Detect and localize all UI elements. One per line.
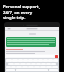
button[interactable] (20, 63, 26, 65)
button[interactable] (22, 66, 28, 68)
button[interactable] (41, 63, 46, 65)
button[interactable] (16, 66, 22, 68)
button[interactable]: Send (55, 55, 58, 58)
button[interactable] (8, 63, 14, 65)
staticText: Personal support, 24/7, on every single … (3, 4, 40, 20)
button[interactable] (5, 27, 59, 31)
button[interactable]: Send (4, 22, 60, 72)
button[interactable] (26, 63, 31, 65)
button[interactable] (52, 66, 58, 68)
button[interactable] (14, 63, 20, 65)
button[interactable] (46, 66, 52, 68)
button[interactable]: Send (5, 54, 59, 58)
button[interactable] (31, 63, 36, 65)
button[interactable] (46, 63, 51, 65)
button[interactable] (6, 37, 56, 47)
button[interactable] (36, 63, 41, 65)
button[interactable] (34, 66, 40, 68)
button[interactable] (40, 66, 46, 68)
button[interactable] (6, 66, 11, 68)
button[interactable] (11, 66, 16, 68)
button[interactable] (28, 66, 34, 68)
button[interactable] (51, 63, 56, 65)
